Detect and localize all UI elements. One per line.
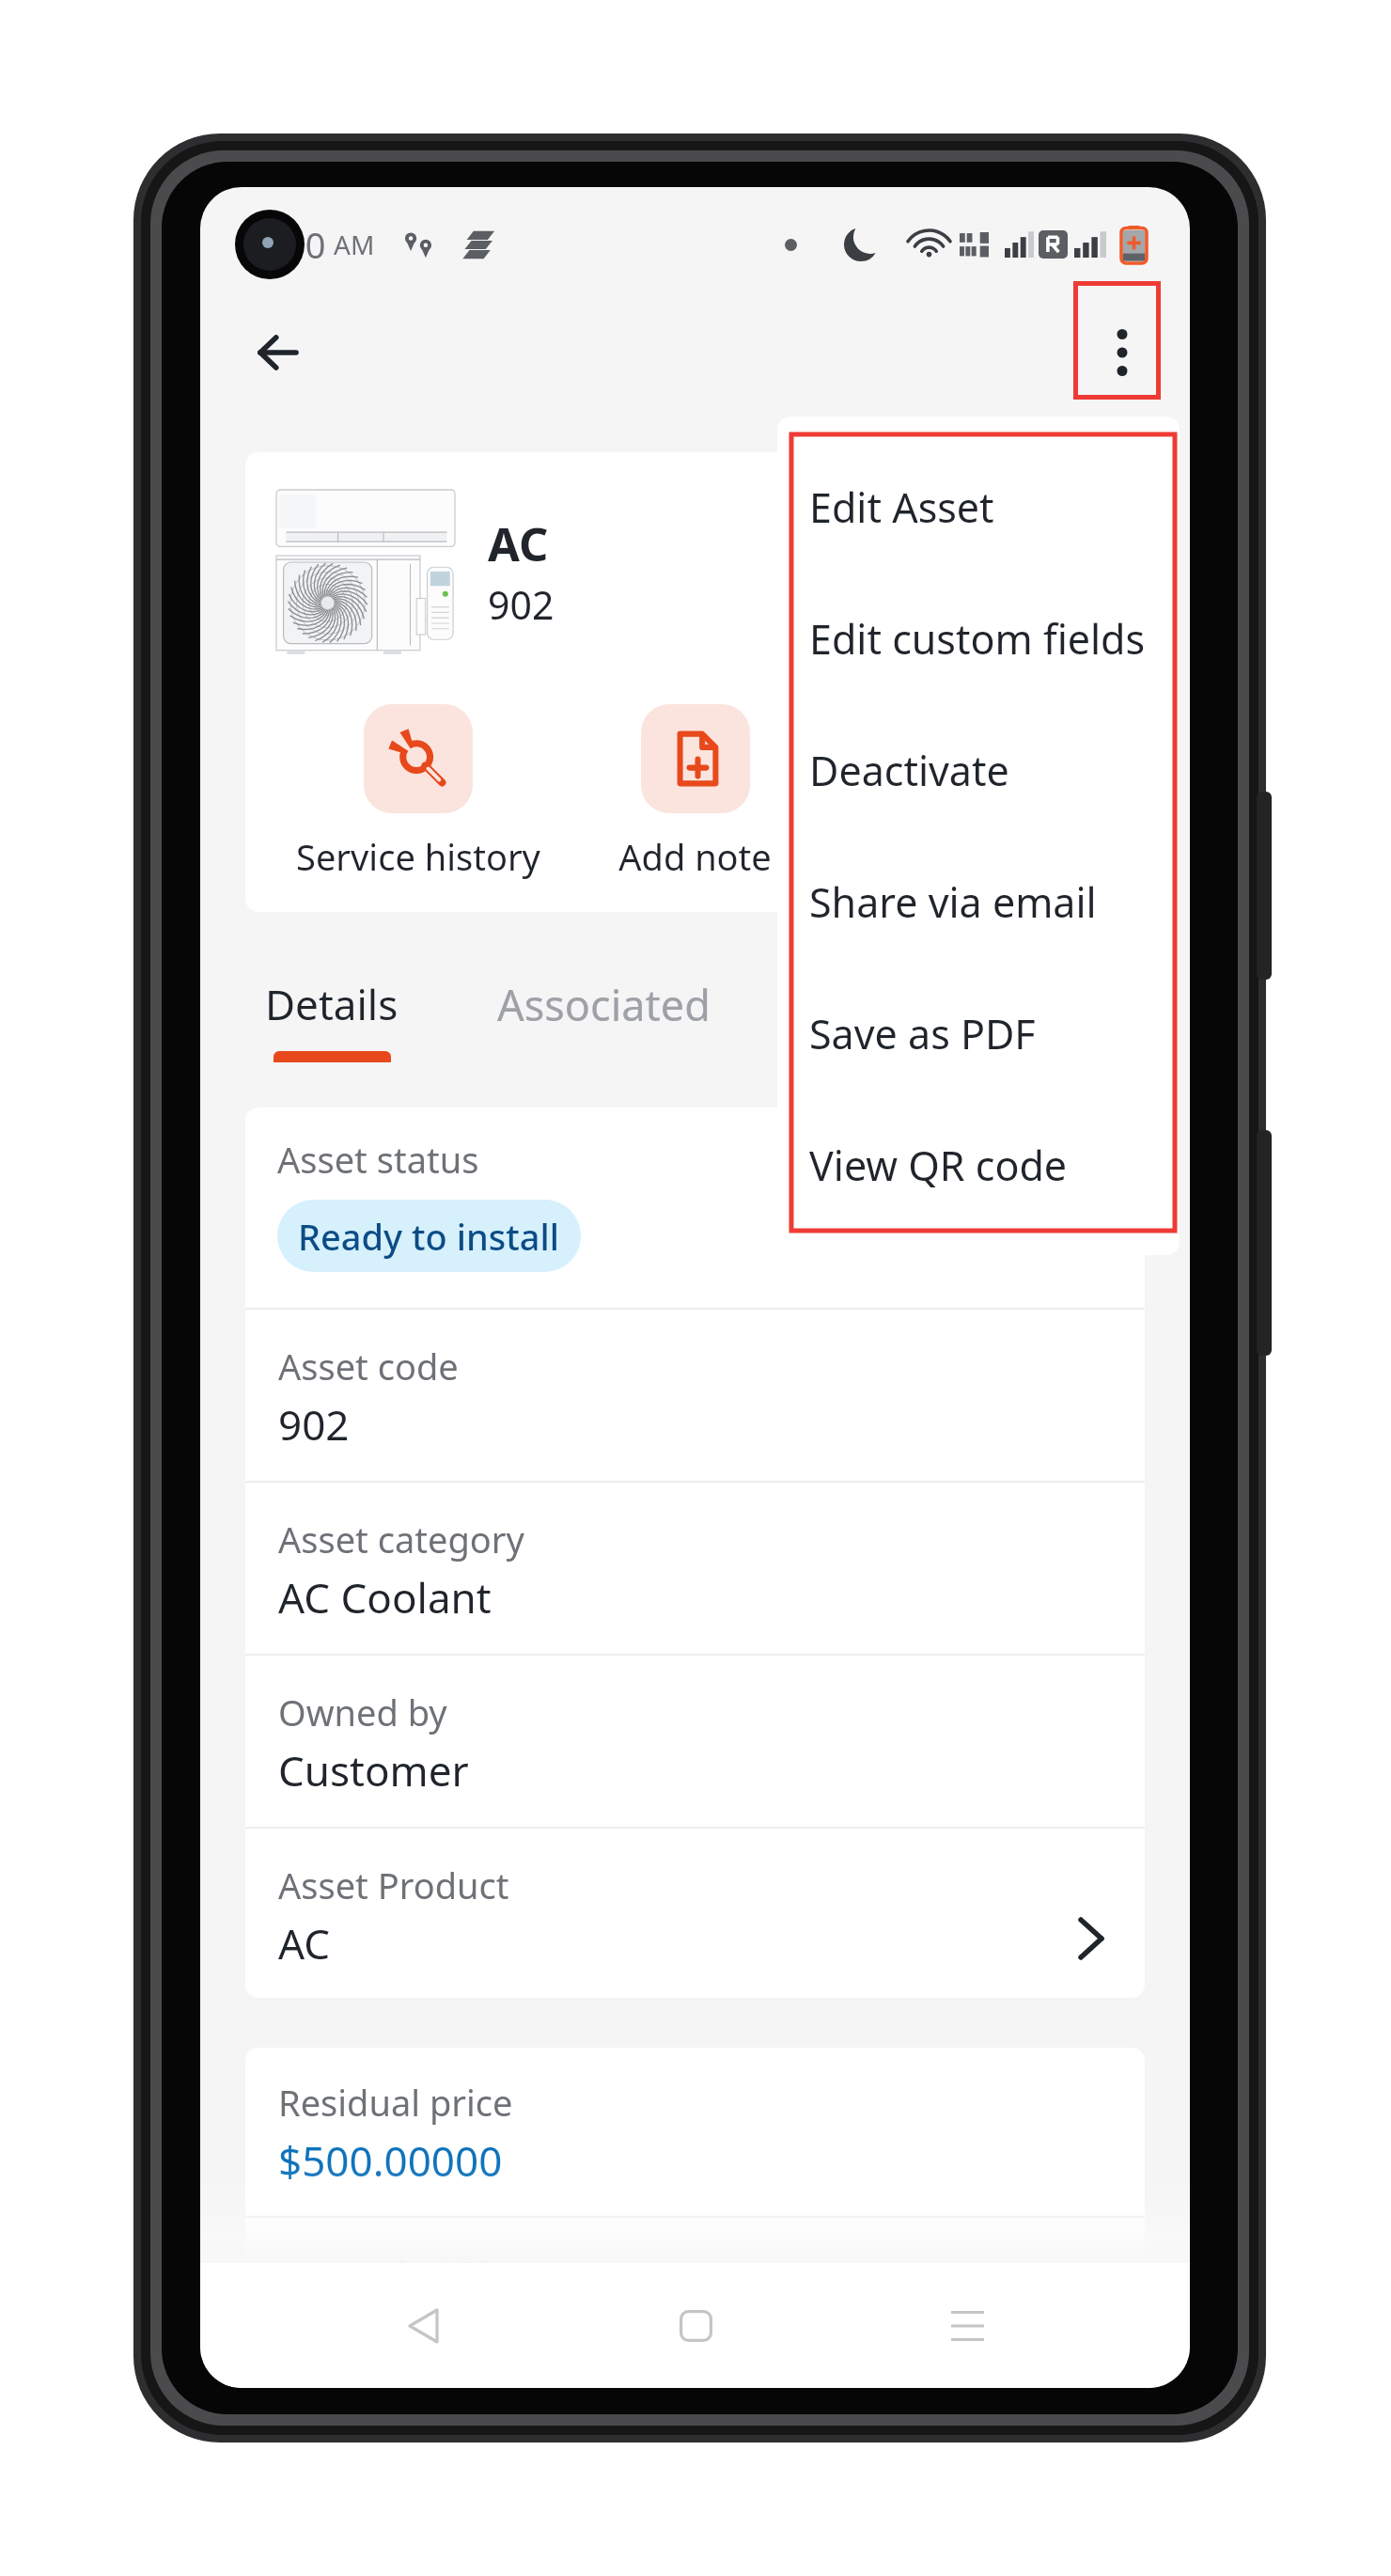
button[interactable]: More options: [1077, 307, 1167, 398]
button[interactable]: Usage full life: [245, 2218, 1145, 2388]
staticText: Save as PDF: [809, 1006, 1036, 1061]
button[interactable]: Asset code: [245, 1310, 1145, 1481]
button[interactable]: Details: [265, 976, 399, 1062]
button[interactable]: Asset Product: [245, 1829, 1145, 1998]
staticText: Details: [265, 976, 399, 1032]
staticText: View QR code: [809, 1138, 1068, 1193]
staticText: Asset code: [278, 1342, 459, 1390]
staticText: AC: [488, 512, 549, 575]
staticText: $500.00000: [278, 2132, 503, 2189]
button[interactable]: Check in: [834, 704, 1111, 881]
button[interactable]: Edit Asset: [777, 441, 1180, 573]
button[interactable]: Recent apps: [918, 2277, 1016, 2375]
staticText: Asset status: [277, 1135, 479, 1184]
button[interactable]: Share via email: [777, 836, 1180, 967]
button[interactable]: Save as PDF: [777, 967, 1180, 1099]
button[interactable]: Back: [232, 307, 322, 398]
staticText: Add note: [618, 832, 772, 881]
button[interactable]: Home: [647, 2277, 744, 2375]
button[interactable]: Deactivate: [777, 704, 1180, 836]
button[interactable]: View QR code: [777, 1099, 1180, 1231]
staticText: AC Coolant: [278, 1569, 492, 1626]
button[interactable]: Owned by: [245, 1656, 1145, 1827]
staticText: 902: [488, 578, 555, 631]
staticText: AM: [334, 227, 375, 262]
button[interactable]: Ready to install: [277, 1200, 581, 1272]
staticText: Associated: [497, 976, 711, 1033]
button[interactable]: Add note: [556, 704, 834, 881]
button[interactable]: Residual price: [245, 2048, 1145, 2216]
button[interactable]: Asset status: [245, 1107, 1145, 1308]
staticText: Edit custom fields: [809, 611, 1146, 667]
staticText: 50: [285, 220, 326, 269]
button[interactable]: Associated: [497, 976, 711, 1033]
staticText: Customer: [278, 1742, 469, 1798]
staticText: Residual price: [278, 2078, 513, 2127]
staticText: Edit Asset: [809, 479, 994, 535]
staticText: Asset Product: [278, 1861, 509, 1909]
staticText: Share via email: [809, 874, 1097, 930]
staticText: Ready to install: [298, 1212, 560, 1261]
button[interactable]: Edit custom fields: [777, 573, 1180, 704]
staticText: Owned by: [278, 1688, 447, 1736]
staticText: 902: [278, 1396, 350, 1453]
button[interactable]: Back: [374, 2277, 472, 2375]
staticText: Deactivate: [809, 743, 1009, 798]
staticText: AC: [278, 1915, 331, 1971]
button[interactable]: Asset category: [245, 1483, 1145, 1654]
staticText: Usage full life: [278, 2250, 507, 2299]
staticText: Service history: [296, 832, 540, 881]
button[interactable]: Service history: [279, 704, 556, 881]
staticText: Asset category: [278, 1515, 524, 1563]
